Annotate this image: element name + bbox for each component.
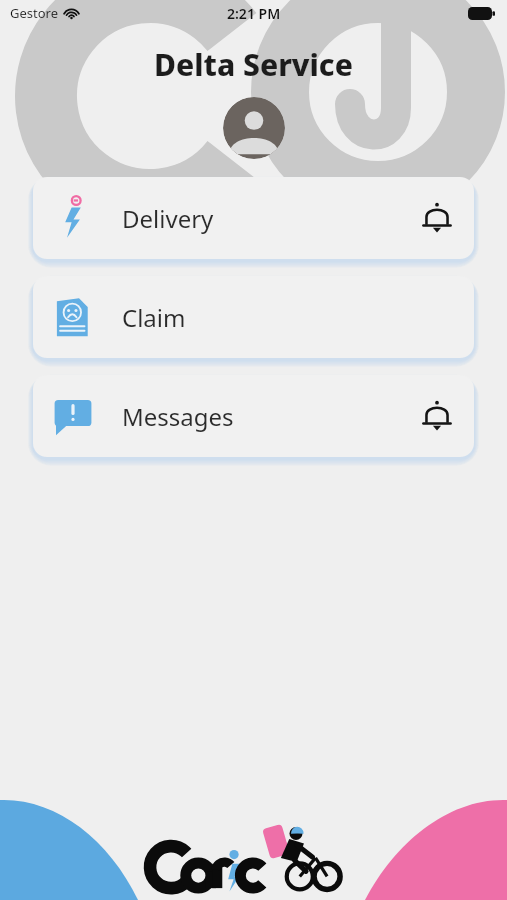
button[interactable]: Notifications [417,396,457,436]
staticText: Claim [122,301,186,334]
button[interactable]: Notifications [417,198,457,238]
button[interactable]: Messages [33,375,474,457]
button[interactable]: Profile [223,97,285,159]
staticText: Messages [122,400,234,433]
button[interactable]: Delivery [33,177,474,259]
staticText: 2:21 PM [227,4,281,23]
button[interactable]: Claim [33,276,474,358]
staticText: Gestore [10,4,59,22]
staticText: Delta Service [0,44,507,85]
staticText: Delivery [122,202,214,235]
